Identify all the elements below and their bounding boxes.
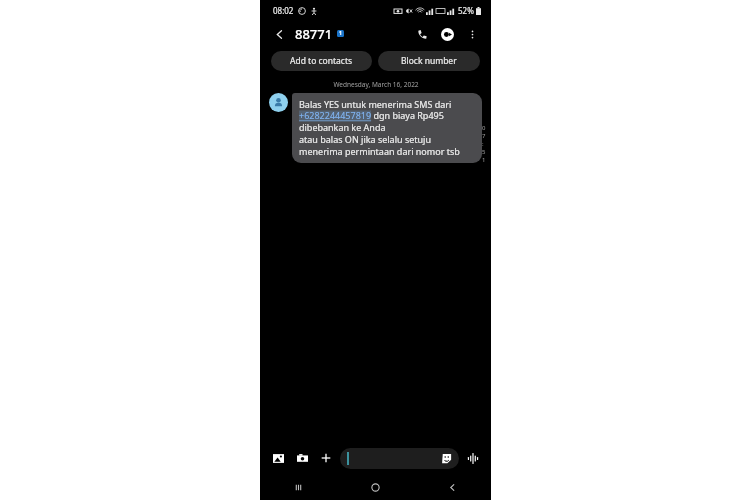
staticText: 08:02 — [273, 5, 294, 16]
staticText: Wednesday, March 16, 2022 — [333, 80, 419, 89]
button[interactable]: Camera — [292, 448, 312, 468]
staticText: Balas YES untuk menerima SMS dari +62822… — [299, 98, 475, 158]
button[interactable]: Home — [337, 474, 414, 500]
button[interactable]: Video call — [436, 23, 458, 45]
button[interactable]: Call — [411, 23, 433, 45]
staticText: Add to contacts — [290, 55, 353, 67]
staticText: 52% — [458, 5, 474, 16]
button[interactable]: Add to contacts — [271, 51, 372, 71]
button[interactable]: More options — [461, 23, 483, 45]
button[interactable]: Back — [414, 474, 491, 500]
button[interactable]: Balas YES untuk menerima SMS dari +62822… — [292, 93, 482, 163]
button[interactable]: Stickers — [340, 448, 459, 469]
button[interactable]: Back — [268, 23, 290, 45]
button[interactable]: Gallery — [268, 448, 288, 468]
staticText: 88771 — [295, 25, 333, 43]
other: Stickers — [441, 453, 452, 464]
button[interactable]: Contact avatar — [269, 93, 288, 112]
button[interactable]: Add attachment — [316, 448, 336, 468]
staticText: Block number — [401, 55, 457, 67]
button[interactable]: Block number — [378, 51, 480, 71]
button[interactable]: Recents — [260, 474, 337, 500]
staticText: 1 — [339, 30, 342, 37]
button[interactable]: Voice message — [463, 448, 483, 468]
